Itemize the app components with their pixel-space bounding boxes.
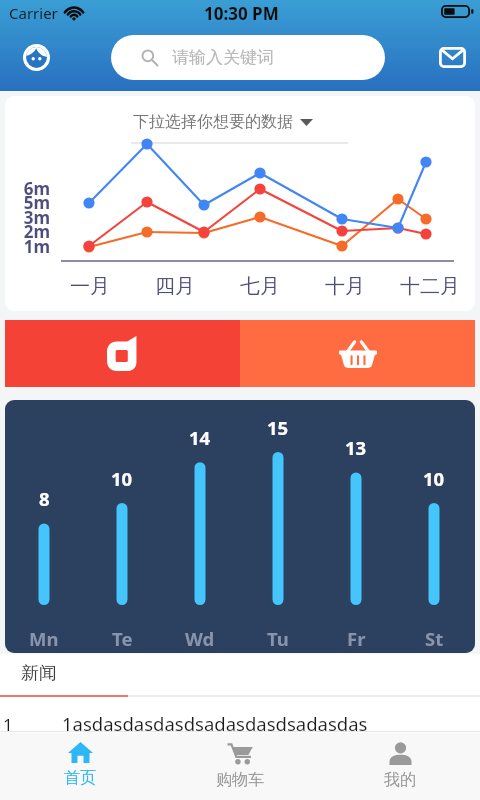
staticText: Tu: [267, 626, 289, 651]
staticText: 十二月: [400, 274, 460, 299]
staticText: Fr: [347, 626, 366, 651]
staticText: 1: [3, 713, 13, 736]
button[interactable]: 首页: [0, 731, 160, 800]
staticText: 四月: [155, 274, 195, 299]
button[interactable]: 请输入关键词: [111, 35, 385, 80]
staticText: 14: [189, 425, 211, 450]
staticText: 购物车: [216, 770, 264, 790]
staticText: 一月: [70, 274, 110, 299]
staticText: 请输入关键词: [172, 47, 274, 68]
button[interactable]: Brand: [5, 320, 240, 387]
staticText: Wd: [185, 626, 215, 651]
staticText: 3m: [5, 206, 50, 229]
staticText: St: [425, 626, 444, 651]
staticText: 10: [423, 466, 445, 491]
staticText: Te: [112, 626, 133, 651]
button[interactable]: 我的: [320, 731, 480, 800]
staticText: 8: [39, 486, 50, 511]
staticText: 2m: [5, 220, 50, 243]
staticText: 十月: [325, 274, 365, 299]
staticText: 5m: [5, 191, 50, 214]
button[interactable]: 新闻: [0, 654, 480, 695]
staticText: 6m: [5, 177, 50, 200]
staticText: 15: [267, 415, 289, 440]
button[interactable]: 1: [0, 697, 480, 733]
staticText: 10: [111, 466, 133, 491]
button[interactable]: Messages: [429, 34, 475, 80]
staticText: Mn: [29, 626, 59, 651]
staticText: 七月: [240, 274, 280, 299]
button[interactable]: Cart: [240, 320, 475, 387]
staticText: Carrier: [9, 3, 58, 23]
staticText: 13: [345, 435, 367, 460]
staticText: 首页: [64, 768, 96, 788]
button[interactable]: 下拉选择你想要的数据: [133, 112, 313, 132]
staticText: 1asdasdasdasdsadasdasdsadasdas: [62, 711, 368, 736]
button[interactable]: 购物车: [160, 731, 320, 800]
staticText: 新闻: [21, 662, 57, 685]
staticText: 1m: [5, 235, 50, 258]
staticText: 10:30 PM: [204, 2, 279, 25]
staticText: 我的: [384, 770, 416, 790]
button[interactable]: Profile: [13, 34, 59, 80]
staticText: 下拉选择你想要的数据: [133, 112, 293, 132]
